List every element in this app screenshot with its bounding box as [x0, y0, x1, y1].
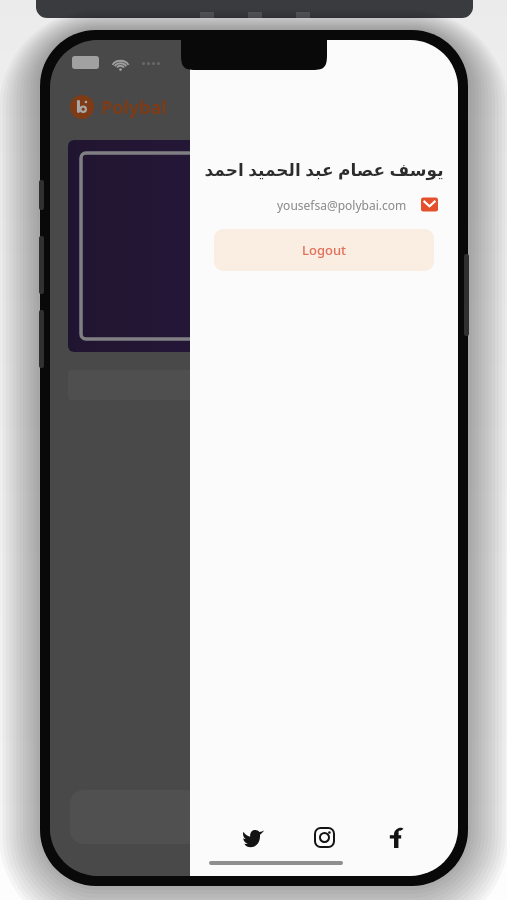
- button[interactable]: Twitter: [236, 820, 270, 854]
- button[interactable]: Logout: [214, 229, 434, 271]
- staticText: دورات: [214, 210, 294, 240]
- button[interactable]: Instagram: [307, 820, 341, 854]
- staticText: Polybal: [101, 95, 167, 120]
- staticText: يوسف عصام عبد الحميد احمد: [198, 158, 450, 181]
- button[interactable]: yousefsa@polybai.com: [216, 196, 438, 213]
- button[interactable]: [70, 790, 220, 844]
- button[interactable]: Polybal: [70, 82, 458, 132]
- staticText: Logout: [302, 241, 347, 259]
- staticText: yousefsa@polybai.com: [277, 197, 407, 213]
- other: Email: [421, 196, 438, 213]
- staticText: محاضرة: [203, 252, 305, 282]
- button[interactable]: دورات: [68, 140, 440, 352]
- button[interactable]: Facebook: [378, 820, 412, 854]
